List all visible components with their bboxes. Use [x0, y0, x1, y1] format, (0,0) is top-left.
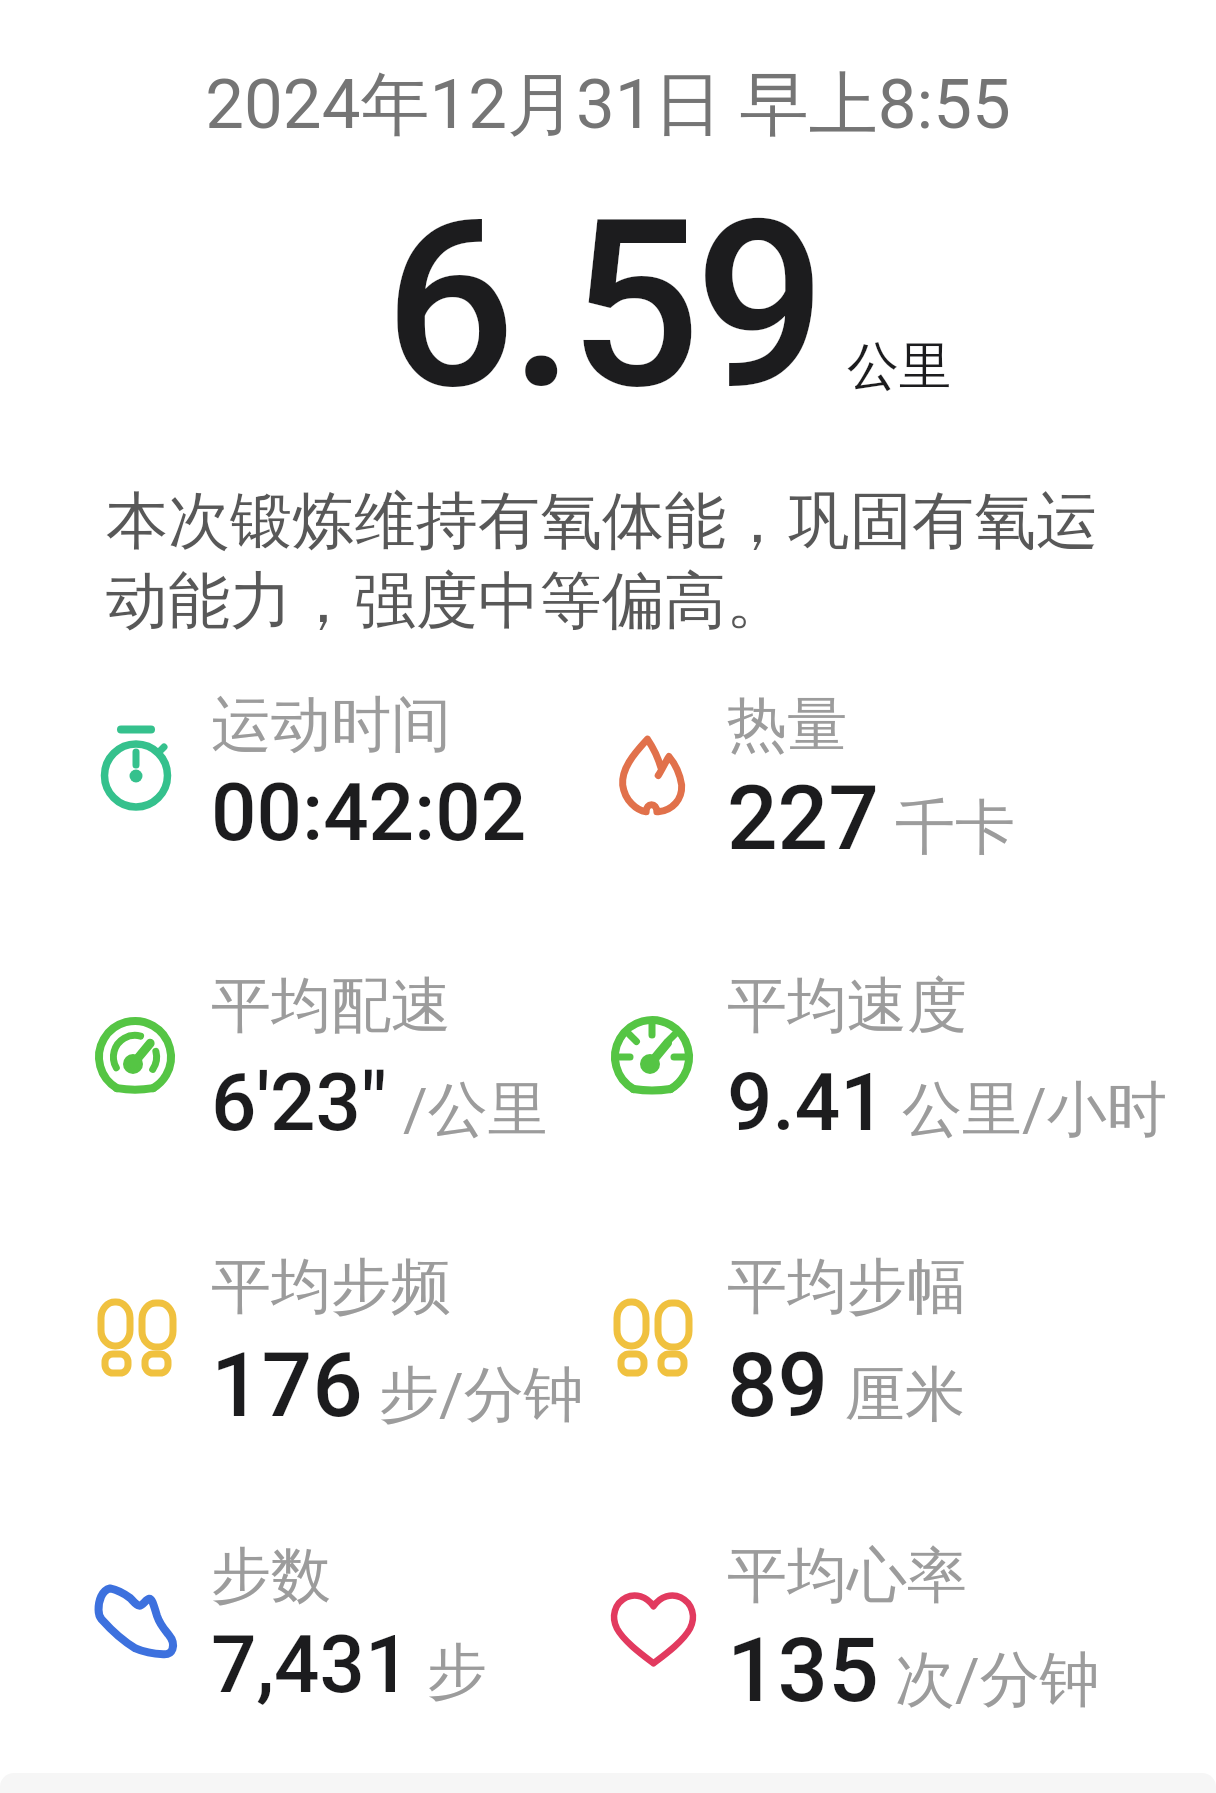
- staticText: 次/分钟: [895, 1642, 1100, 1718]
- staticText: 运动时间: [211, 687, 451, 763]
- staticText: 平均心率: [727, 1538, 967, 1614]
- staticText: 2024年12月31日 早上8:55: [0, 62, 1216, 149]
- staticText: 89: [727, 1333, 829, 1437]
- staticText: 00:42:02: [211, 766, 527, 860]
- staticText: 6.59: [384, 170, 821, 442]
- staticText: /公里: [403, 1072, 548, 1148]
- staticText: 9.41: [727, 1056, 886, 1150]
- staticText: 步: [427, 1634, 487, 1710]
- button[interactable]: [596, 1523, 1101, 1723]
- staticText: 平均步频: [211, 1249, 451, 1325]
- staticText: 步数: [211, 1538, 331, 1614]
- button[interactable]: [80, 953, 585, 1153]
- staticText: 本次锻炼维持有氧体能，巩固有氧运动能力，强度中等偏高。: [106, 482, 1121, 640]
- staticText: 7,431: [211, 1618, 411, 1712]
- staticText: 6'23": [211, 1056, 387, 1150]
- button[interactable]: [596, 1234, 1101, 1434]
- button[interactable]: [80, 1523, 585, 1723]
- button[interactable]: [596, 672, 1101, 872]
- button[interactable]: [80, 672, 585, 872]
- button[interactable]: [80, 1234, 585, 1434]
- staticText: 平均速度: [727, 968, 967, 1044]
- staticText: 227: [727, 766, 879, 870]
- staticText: 热量: [727, 687, 847, 763]
- staticText: 平均配速: [211, 968, 451, 1044]
- staticText: 厘米: [845, 1357, 965, 1433]
- staticText: 公里: [847, 334, 951, 400]
- staticText: 176: [211, 1333, 363, 1437]
- staticText: 公里/小时: [902, 1072, 1167, 1148]
- staticText: 平均步幅: [727, 1249, 967, 1325]
- staticText: 千卡: [895, 790, 1015, 866]
- button[interactable]: [596, 953, 1101, 1153]
- staticText: 135: [727, 1618, 879, 1722]
- staticText: 步/分钟: [379, 1357, 584, 1433]
